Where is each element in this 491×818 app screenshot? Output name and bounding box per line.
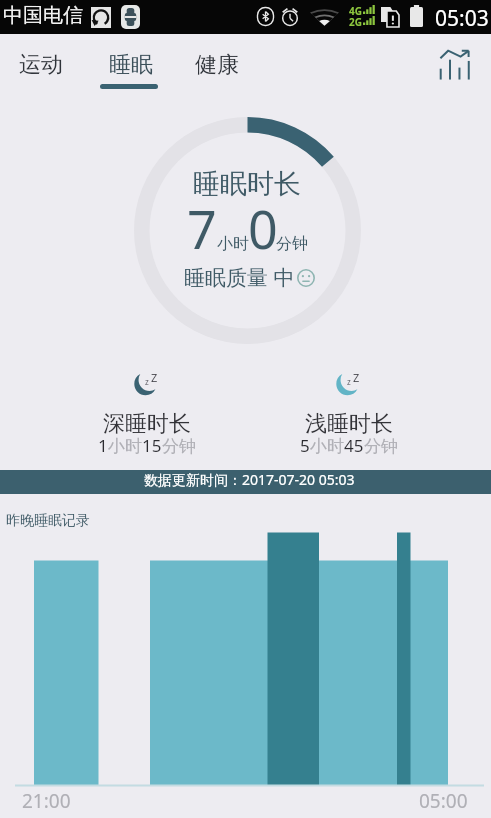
staticText: 05:00 <box>419 788 468 814</box>
staticText: z <box>145 376 149 387</box>
staticText: 分钟 <box>276 234 308 254</box>
staticText: 浅睡时长 <box>305 410 393 438</box>
button[interactable]: z <box>274 371 424 461</box>
staticText: 运动 <box>19 51 63 79</box>
staticText: 45 <box>344 434 364 457</box>
staticText: 睡眠质量 中 <box>184 263 295 292</box>
staticText: 4G <box>349 4 362 18</box>
button[interactable]: Statistics <box>433 43 475 85</box>
staticText: 21:00 <box>22 788 71 814</box>
button[interactable]: 运动 <box>11 34 71 92</box>
staticText: Z <box>151 370 158 385</box>
staticText: 7 <box>187 193 217 264</box>
staticText: 1 <box>98 434 108 457</box>
staticText: 小时 <box>310 436 344 457</box>
staticText: 睡眠 <box>109 51 153 79</box>
staticText: z <box>347 376 351 387</box>
staticText: 健康 <box>195 51 239 79</box>
button[interactable]: 睡眠 <box>101 34 175 92</box>
staticText: 5 <box>300 434 310 457</box>
staticText: 分钟 <box>162 436 196 457</box>
staticText: Z <box>353 370 360 385</box>
staticText: 中国电信 <box>3 3 83 28</box>
staticText: 05:03 <box>435 4 489 33</box>
staticText: 深睡时长 <box>103 410 191 438</box>
staticText: 小时 <box>108 436 142 457</box>
staticText: 15 <box>142 434 162 457</box>
staticText: 小时 <box>217 234 249 254</box>
staticText: 睡眠时长 <box>193 167 301 201</box>
button[interactable]: z <box>72 371 222 461</box>
staticText: 2G <box>349 15 362 29</box>
staticText: 0 <box>248 193 278 264</box>
button[interactable]: 健康 <box>187 34 247 92</box>
staticText: 分钟 <box>364 436 398 457</box>
staticText: 数据更新时间：2017-07-20 05:03 <box>144 470 355 489</box>
staticText: 昨晚睡眠记录 <box>6 512 90 530</box>
